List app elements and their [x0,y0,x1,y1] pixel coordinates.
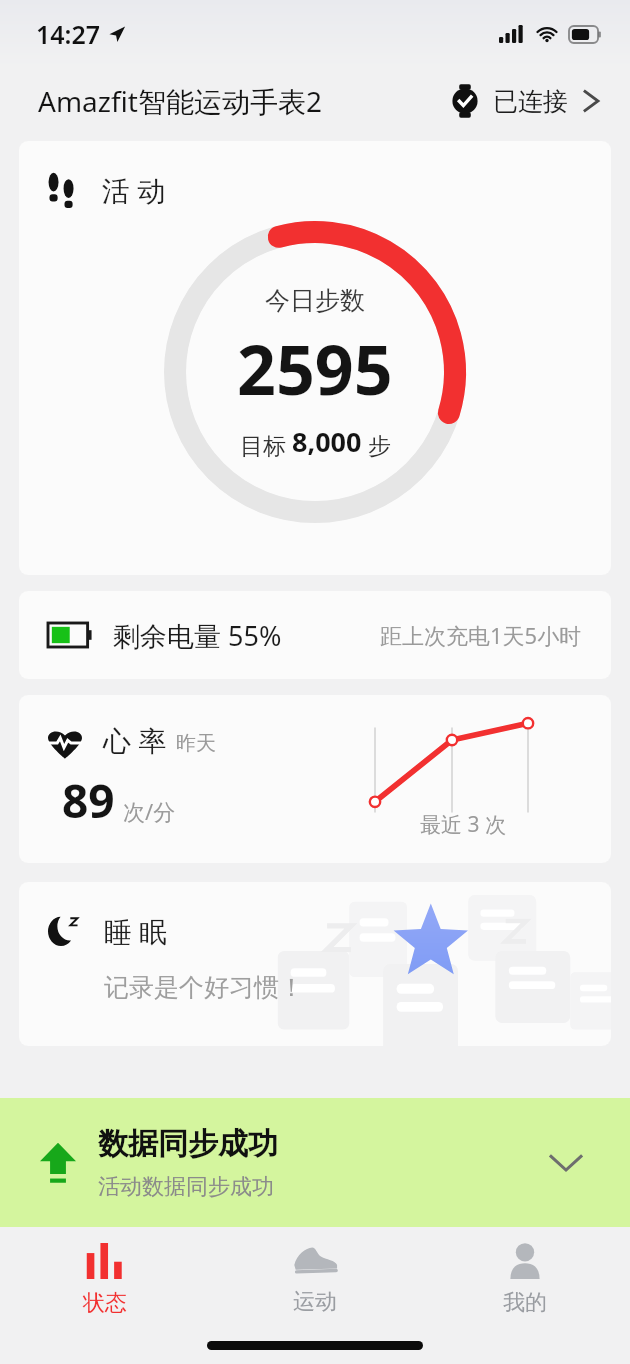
staticText: 距上次充电1天5小时 [380,620,582,650]
button[interactable]: 我的 [420,1227,630,1332]
staticText: 状态 [83,1289,127,1317]
staticText: 目标 [240,429,292,460]
staticText: 步 [362,429,391,460]
staticText: 我的 [503,1289,547,1317]
staticText: 运动 [293,1288,337,1316]
staticText: 活 动 [102,171,166,209]
staticText: 心 率 [103,721,167,759]
staticText: 14:27 [36,17,101,51]
staticText: 数据同步成功 [98,1125,278,1163]
button[interactable]: Collapse [538,1135,594,1191]
staticText: 睡 眠 [104,912,168,950]
staticText: 记录是个好习惯！ [104,972,304,1003]
button[interactable]: 状态 [0,1227,210,1332]
staticText: 次/分 [123,796,176,826]
staticText: 2595 [237,322,393,415]
button[interactable]: 活 动 [19,141,611,575]
button[interactable]: 睡 眠 [19,882,611,1046]
button[interactable]: 数据同步成功 [0,1098,630,1227]
staticText: 今日步数 [265,285,365,316]
staticText: 最近 3 次 [420,810,506,839]
button[interactable]: 心 率 [19,695,611,863]
staticText: Amazfit智能运动手表2 [38,82,322,120]
staticText: 剩余电量 55% [113,617,282,654]
staticText: 8,000 [292,423,362,460]
staticText: 昨天 [176,731,216,756]
staticText: 活动数据同步成功 [98,1173,274,1201]
staticText: 已连接 [493,86,568,117]
button[interactable]: 已连接 [448,84,602,118]
button[interactable]: 运动 [210,1227,420,1332]
button[interactable]: 剩余电量 55% [19,591,611,679]
staticText: 89 [62,769,115,832]
